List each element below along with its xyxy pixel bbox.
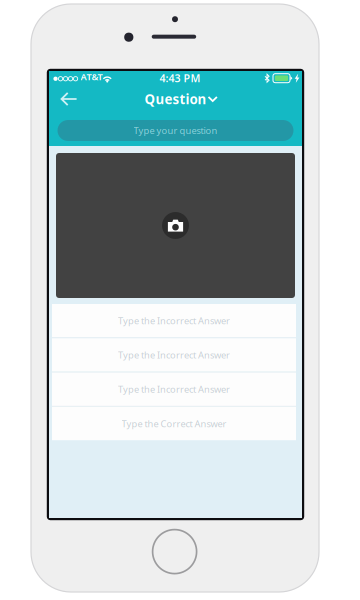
button[interactable]: Type the Incorrect Answer <box>52 304 296 337</box>
button[interactable]: Back <box>51 86 87 112</box>
staticText: Question <box>144 90 206 108</box>
button[interactable]: Type the Correct Answer <box>52 407 296 440</box>
staticText: Type the Incorrect Answer <box>118 314 230 327</box>
button[interactable]: Question <box>138 86 224 112</box>
button[interactable]: Type the Incorrect Answer <box>52 338 296 372</box>
button[interactable]: Type your question <box>57 120 293 141</box>
button[interactable]: Type the Incorrect Answer <box>52 373 296 406</box>
staticText: 4:43 PM <box>159 71 200 85</box>
staticText: Type the Incorrect Answer <box>118 383 230 395</box>
staticText: Type the Correct Answer <box>121 417 226 430</box>
staticText: Type the Incorrect Answer <box>118 349 230 361</box>
staticText: AT&T <box>81 70 103 83</box>
button[interactable]: Add photo <box>56 153 295 298</box>
staticText: Type your question <box>133 124 217 137</box>
